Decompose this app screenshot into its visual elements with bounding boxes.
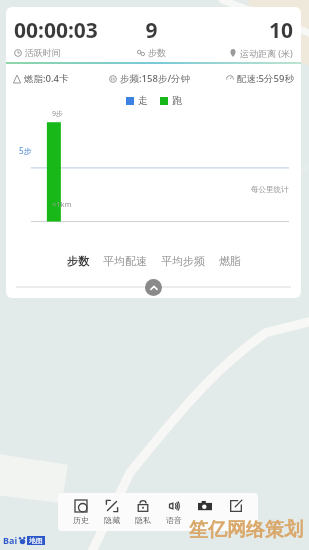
staticText: 语音 <box>166 515 182 525</box>
staticText: 配速:5分59秒 <box>237 72 294 85</box>
staticText: 5步 <box>19 145 32 156</box>
staticText: 每公里统计 <box>251 185 289 194</box>
staticText: 燃脂:0.4卡 <box>24 72 69 85</box>
button[interactable]: 隐藏 <box>96 498 127 526</box>
staticText: 步数 <box>148 47 166 58</box>
button[interactable]: 步频:158步/分钟 <box>97 72 202 85</box>
button[interactable]: Collapse <box>145 279 162 296</box>
button[interactable]: 步数 <box>65 252 91 270</box>
staticText: 隐藏 <box>104 515 120 525</box>
button[interactable]: 历史 <box>65 498 96 526</box>
button[interactable]: 00:00:03 <box>14 16 110 58</box>
staticText: 历史 <box>73 515 89 525</box>
staticText: <1km <box>52 199 72 209</box>
staticText: 笙亿网络策划 <box>189 518 303 542</box>
staticText: 跑 <box>172 94 182 107</box>
staticText: Bai <box>3 534 18 546</box>
button[interactable]: 语音 <box>158 498 189 526</box>
button[interactable]: 平均配速 <box>101 252 149 270</box>
staticText: 平均步频 <box>161 254 205 268</box>
button[interactable]: Share <box>220 498 251 526</box>
button[interactable]: 平均步频 <box>159 252 207 270</box>
staticText: 隐私 <box>135 515 151 525</box>
button[interactable]: 10 <box>193 16 293 59</box>
staticText: 地图 <box>29 536 43 545</box>
button[interactable]: 燃脂:0.4卡 <box>13 72 97 85</box>
staticText: 运动距离 (米) <box>240 47 293 59</box>
staticText: 9 <box>145 16 158 45</box>
staticText: 9步 <box>52 109 64 119</box>
staticText: 活跃时间 <box>25 47 61 58</box>
button[interactable]: 配速:5分59秒 <box>202 72 294 85</box>
staticText: 00:00:03 <box>14 16 98 45</box>
staticText: 步频:158步/分钟 <box>120 72 191 85</box>
staticText: 步数 <box>67 254 89 268</box>
button[interactable]: 燃脂 <box>217 252 243 270</box>
button[interactable]: 9 <box>110 16 193 58</box>
staticText: 10 <box>268 16 293 45</box>
staticText: 平均配速 <box>103 254 147 268</box>
staticText: 燃脂 <box>219 254 241 268</box>
button[interactable]: Camera <box>189 498 220 526</box>
staticText: 走 <box>138 94 148 107</box>
button[interactable]: 隐私 <box>127 498 158 526</box>
